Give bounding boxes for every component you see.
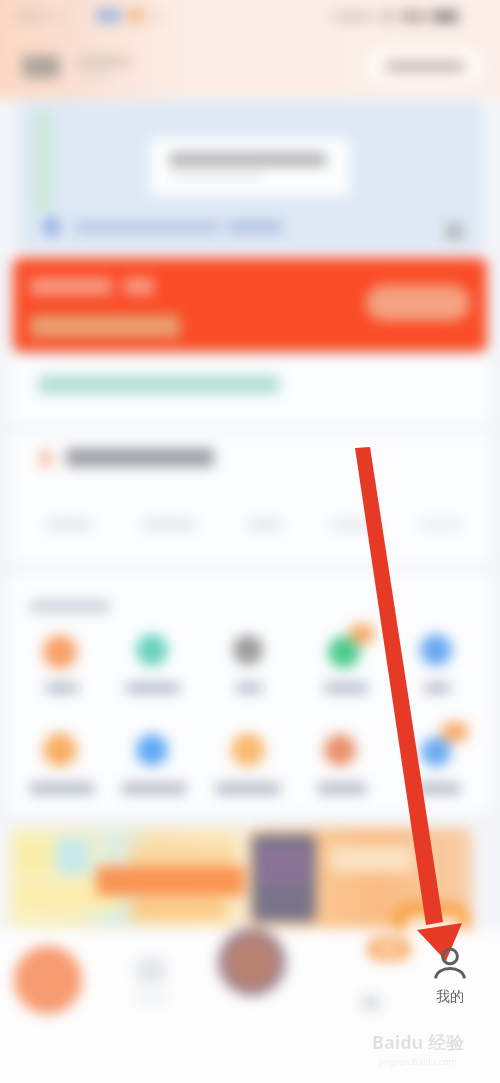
button[interactable]: 我的 Mine profile bbox=[402, 946, 498, 1006]
staticText: jingyan.baidu.com bbox=[379, 1055, 457, 1067]
staticText: Baidu 经验 bbox=[372, 1030, 464, 1055]
other: 我的 Mine profile bbox=[432, 946, 468, 982]
staticText: 我的 bbox=[436, 988, 464, 1006]
